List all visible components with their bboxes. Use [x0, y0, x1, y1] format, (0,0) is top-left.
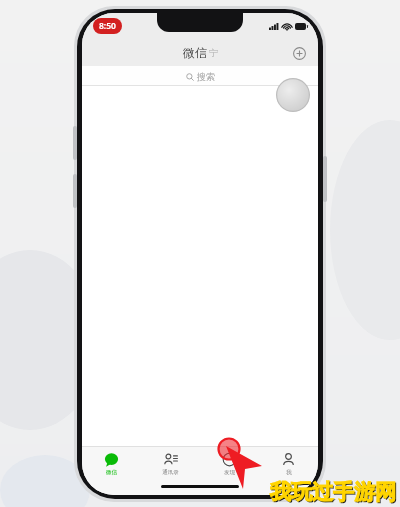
button[interactable]: Add	[289, 43, 309, 63]
button[interactable]: 搜索	[82, 66, 318, 86]
staticText: 发现	[224, 469, 235, 476]
button[interactable]: 微信	[82, 447, 141, 481]
staticText: 我玩过手游网	[270, 479, 396, 505]
staticText: 8:50	[99, 20, 116, 32]
staticText: 微信	[106, 469, 117, 476]
staticText: 搜索	[197, 71, 215, 82]
staticText: 我玩过手游网	[271, 480, 397, 506]
staticText: 我	[286, 469, 292, 476]
staticText: 通讯录	[162, 469, 179, 476]
button[interactable]: 发现	[200, 447, 259, 481]
staticText: 微信	[183, 45, 207, 60]
staticText: 宁	[209, 47, 218, 58]
button[interactable]: 我	[259, 447, 318, 481]
button[interactable]: 通讯录	[141, 447, 200, 481]
